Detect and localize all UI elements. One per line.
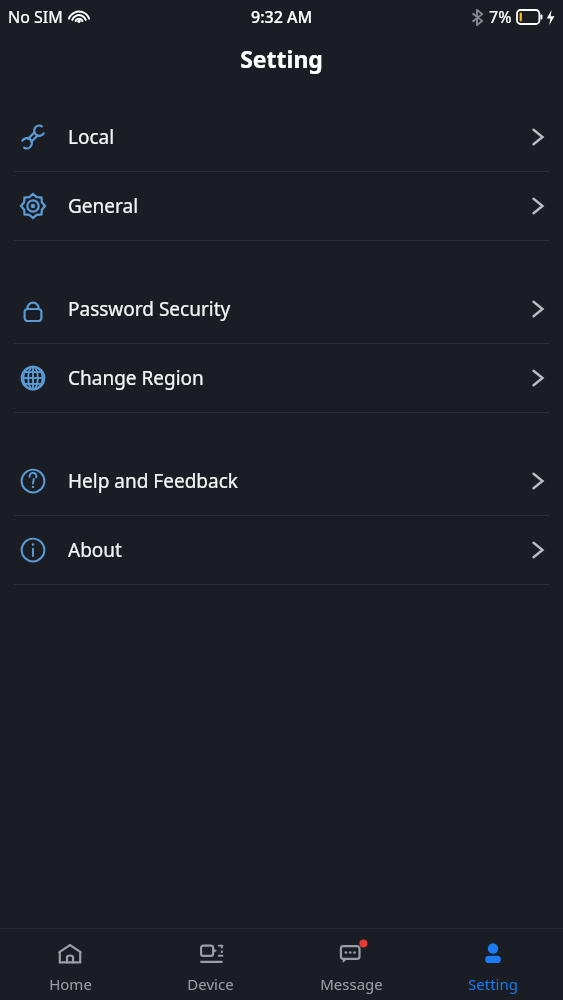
button[interactable]: Password Security bbox=[0, 275, 563, 343]
staticText: Setting bbox=[240, 43, 323, 74]
staticText: 9:32 AM bbox=[251, 6, 313, 28]
staticText: Change Region bbox=[68, 365, 204, 391]
staticText: No SIM bbox=[8, 6, 63, 28]
staticText: Local bbox=[68, 124, 115, 150]
staticText: 7% bbox=[489, 6, 512, 28]
button[interactable]: Help and Feedback bbox=[0, 447, 563, 515]
button[interactable]: Device bbox=[140, 929, 281, 1000]
button[interactable]: General bbox=[0, 172, 563, 240]
button[interactable]: About bbox=[0, 516, 563, 584]
button[interactable]: Setting bbox=[422, 929, 563, 1000]
button[interactable]: Change Region bbox=[0, 344, 563, 412]
button[interactable]: Local bbox=[0, 103, 563, 171]
staticText: Setting bbox=[468, 974, 518, 994]
button[interactable]: Message bbox=[281, 929, 422, 1000]
staticText: About bbox=[68, 537, 122, 563]
button[interactable]: Home bbox=[0, 929, 140, 1000]
staticText: Help and Feedback bbox=[68, 468, 238, 494]
staticText: Password Security bbox=[68, 296, 231, 322]
staticText: Device bbox=[187, 974, 234, 994]
staticText: Home bbox=[49, 974, 92, 994]
staticText: General bbox=[68, 193, 139, 219]
staticText: Message bbox=[320, 974, 383, 994]
